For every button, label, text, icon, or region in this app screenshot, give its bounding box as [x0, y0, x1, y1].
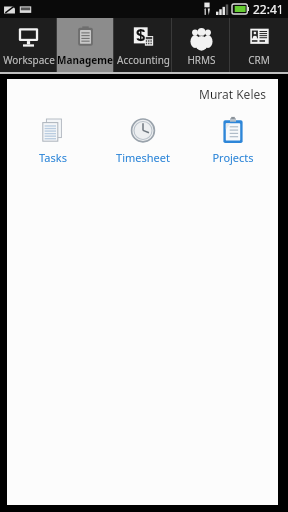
- staticText: Projects: [212, 150, 254, 165]
- button[interactable]: HRMS: [172, 18, 230, 72]
- staticText: Accounting: [117, 53, 170, 67]
- staticText: Tasks: [39, 150, 67, 165]
- staticText: Workspace: [3, 53, 55, 67]
- staticText: Timesheet: [116, 150, 170, 165]
- staticText: 22:41: [253, 1, 284, 17]
- button[interactable]: Timesheet: [98, 114, 188, 167]
- button[interactable]: Workspace: [0, 18, 57, 72]
- staticText: Management: [57, 53, 114, 67]
- button[interactable]: Accounting: [114, 18, 172, 72]
- staticText: Murat Keles: [7, 86, 266, 102]
- button[interactable]: CRM: [230, 18, 288, 72]
- staticText: CRM: [248, 53, 270, 67]
- staticText: HRMS: [187, 53, 216, 67]
- button[interactable]: Tasks: [7, 114, 98, 167]
- button[interactable]: Projects: [188, 114, 278, 167]
- button[interactable]: Management: [57, 18, 114, 72]
